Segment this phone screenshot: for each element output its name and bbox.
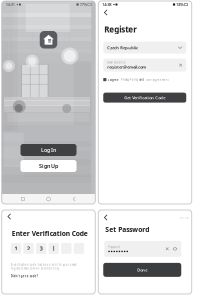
staticText: 3: [40, 245, 43, 252]
staticText: 2: [27, 245, 30, 252]
staticText: Register: [104, 24, 137, 35]
staticText: 03:16: [180, 216, 189, 219]
staticText: User Agreement: [146, 78, 169, 81]
staticText: Set Password: [105, 225, 149, 234]
staticText: I Agree: [108, 78, 119, 81]
staticText: Done: [137, 267, 147, 272]
staticText: and: [139, 78, 144, 81]
staticText: Enter Verification Code: [12, 229, 88, 238]
button[interactable]: Recents: [18, 194, 27, 203]
staticText: 74%: [176, 2, 183, 7]
button[interactable]: I Agree: [98, 77, 192, 83]
staticText: 14:38: [102, 2, 111, 7]
button[interactable]: Back: [5, 212, 14, 221]
staticText: 1: [14, 245, 17, 252]
staticText: 77%: [80, 2, 87, 7]
button[interactable]: Back: [101, 213, 110, 222]
staticText: 14:31: [6, 2, 15, 7]
button[interactable]: Done: [103, 263, 181, 277]
button[interactable]: Back: [101, 8, 110, 17]
staticText: Log In: [41, 146, 56, 154]
button[interactable]: Get Verification Code: [103, 93, 186, 103]
button[interactable]: Sign Up: [20, 160, 76, 172]
staticText: Didn't get a code?: [11, 274, 38, 278]
staticText: Email Address: [107, 61, 125, 64]
staticText: registeremail.com 60 seconds only.: [11, 267, 60, 270]
staticText: Privacy Policy: [121, 78, 138, 81]
button[interactable]: Log In: [20, 144, 76, 156]
button[interactable]: Home: [44, 194, 53, 203]
staticText: Get Verification Code: [124, 95, 165, 100]
staticText: A verification code has been sent to you…: [11, 263, 77, 266]
staticText: Password: [108, 245, 120, 249]
staticText: Czech Republic: [107, 45, 138, 50]
button[interactable]: Didn't get a code?: [2, 274, 38, 278]
button[interactable]: Back: [70, 194, 79, 203]
staticText: register@email.com: [107, 64, 146, 69]
staticText: Sign Up: [39, 162, 58, 170]
